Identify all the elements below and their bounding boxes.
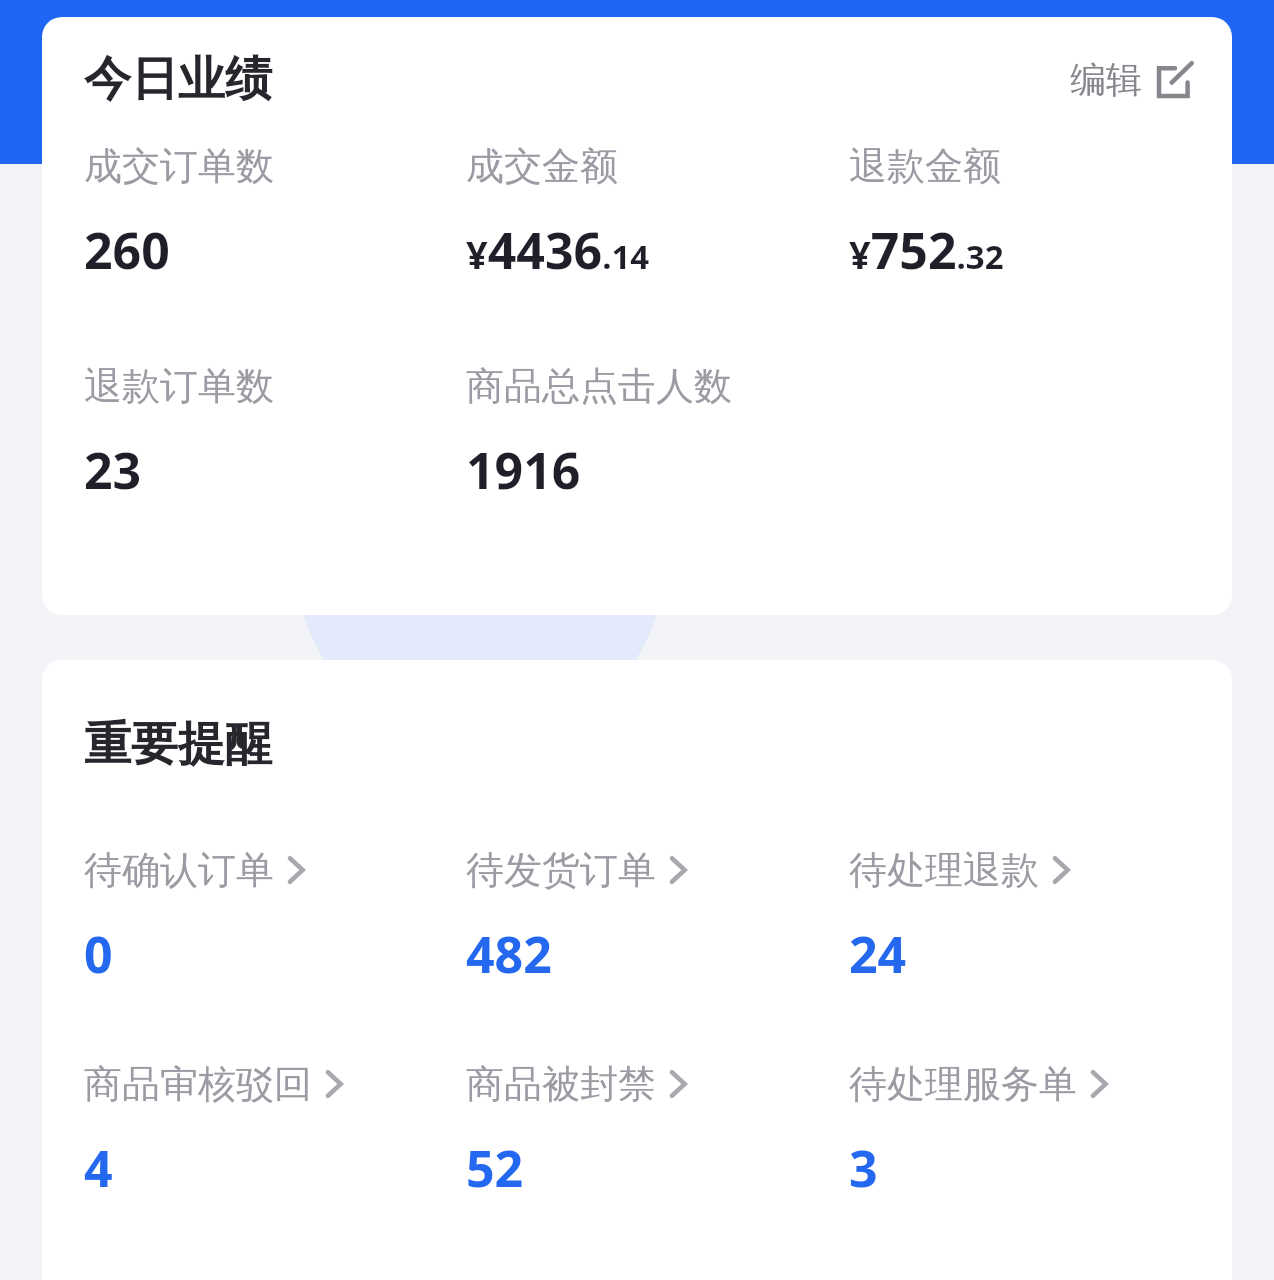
- button[interactable]: 退款订单数: [84, 362, 466, 504]
- staticText: 退款金额: [849, 142, 1001, 190]
- button[interactable]: 商品被封禁: [466, 1060, 849, 1202]
- staticText: 退款订单数: [84, 362, 274, 410]
- staticText: 待处理退款: [849, 846, 1039, 894]
- staticText: 4: [84, 1134, 113, 1202]
- staticText: 待发货订单: [466, 846, 656, 894]
- button[interactable]: 待确认订单: [84, 846, 466, 988]
- staticText: 3: [849, 1134, 878, 1202]
- button[interactable]: 成交订单数: [84, 142, 466, 284]
- staticText: 482: [466, 920, 552, 988]
- button[interactable]: 退款金额: [849, 142, 1232, 284]
- button[interactable]: 成交金额: [466, 142, 849, 284]
- staticText: 今日业绩: [84, 50, 272, 109]
- staticText: 待处理服务单: [849, 1060, 1077, 1108]
- button[interactable]: 商品审核驳回: [84, 1060, 466, 1202]
- staticText: 成交金额: [466, 142, 618, 190]
- button[interactable]: 待发货订单: [466, 846, 849, 988]
- staticText: ¥4436.14: [466, 216, 650, 284]
- staticText: 商品被封禁: [466, 1060, 656, 1108]
- staticText: ¥752.32: [849, 216, 1004, 284]
- button[interactable]: 待处理服务单: [849, 1060, 1232, 1202]
- staticText: 商品总点击人数: [466, 362, 732, 410]
- other: 编辑: [1154, 59, 1196, 101]
- staticText: 260: [84, 216, 170, 284]
- staticText: 待确认订单: [84, 846, 274, 894]
- button[interactable]: 编辑: [1064, 49, 1202, 110]
- staticText: 23: [84, 436, 142, 504]
- button[interactable]: 商品总点击人数: [466, 362, 849, 504]
- staticText: 1916: [466, 436, 581, 504]
- staticText: 商品审核驳回: [84, 1060, 312, 1108]
- button[interactable]: 待处理退款: [849, 846, 1232, 988]
- staticText: 重要提醒: [84, 715, 272, 774]
- staticText: 24: [849, 920, 907, 988]
- staticText: 0: [84, 920, 113, 988]
- staticText: 编辑: [1070, 57, 1142, 102]
- staticText: 成交订单数: [84, 142, 274, 190]
- staticText: 52: [466, 1134, 524, 1202]
